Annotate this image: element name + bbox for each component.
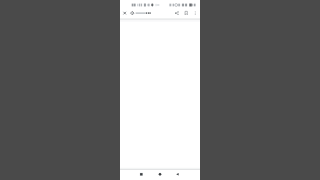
button[interactable]: Home — [155, 170, 165, 180]
button[interactable]: Back — [136, 170, 146, 180]
button[interactable]: More options — [192, 10, 199, 17]
button[interactable]: Share — [174, 10, 181, 17]
button[interactable]: Site information — [130, 10, 168, 17]
button[interactable]: Bookmark — [183, 10, 190, 17]
button[interactable]: Close — [122, 10, 129, 17]
button[interactable]: Recent apps — [173, 170, 183, 180]
